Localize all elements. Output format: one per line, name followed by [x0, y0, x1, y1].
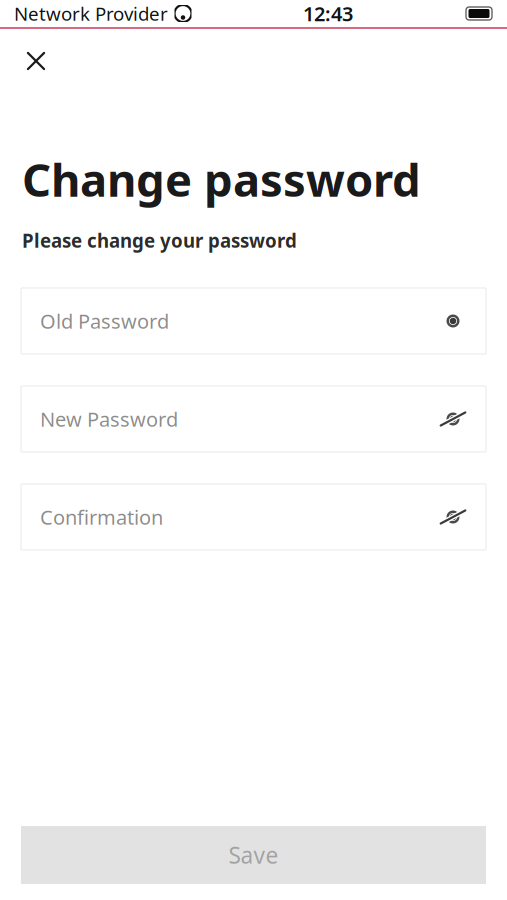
staticText: New Password: [40, 406, 178, 432]
button[interactable]: Save: [21, 826, 486, 884]
staticText: Confirmation: [40, 504, 163, 530]
button[interactable]: Show confirmation password: [433, 497, 473, 537]
button[interactable]: Hide old password: [433, 301, 473, 341]
staticText: Change password: [22, 149, 421, 209]
staticText: Save: [228, 840, 278, 870]
staticText: Please change your password: [22, 228, 297, 253]
staticText: Network Provider: [14, 1, 168, 26]
staticText: Old Password: [40, 308, 169, 334]
staticText: 12:43: [303, 0, 353, 27]
button[interactable]: Show new password: [433, 399, 473, 439]
button[interactable]: Close: [14, 41, 58, 81]
